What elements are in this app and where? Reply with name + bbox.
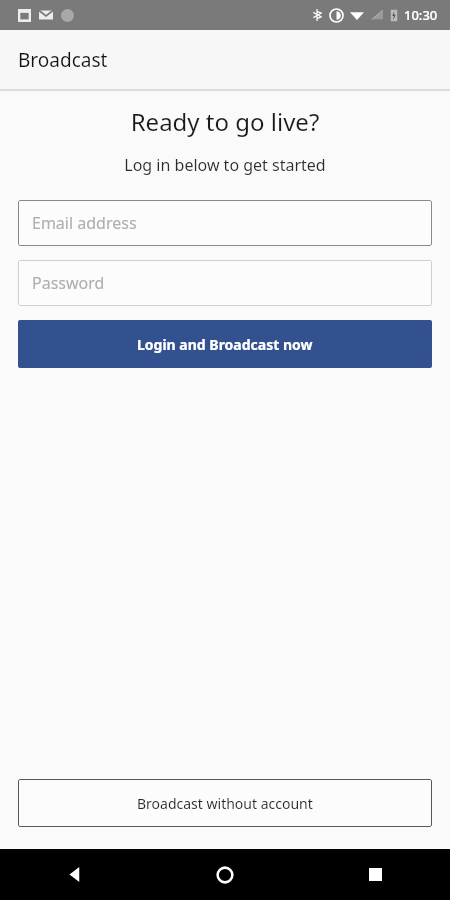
button[interactable]: Recent apps xyxy=(300,849,450,900)
button[interactable]: Broadcast without account xyxy=(18,779,432,827)
staticText: Ready to go live? xyxy=(0,105,450,138)
button[interactable]: Home xyxy=(150,849,300,900)
button[interactable]: Login and Broadcast now xyxy=(18,320,432,368)
staticText: Broadcast xyxy=(18,47,108,73)
button[interactable]: Back xyxy=(0,849,150,900)
staticText: Broadcast without account xyxy=(137,794,313,813)
button[interactable]: Password xyxy=(18,260,432,306)
staticText: Log in below to get started xyxy=(0,154,450,176)
staticText: Password xyxy=(32,272,105,294)
button[interactable]: Email address xyxy=(18,200,432,246)
staticText: Email address xyxy=(32,212,137,234)
staticText: 10:30 xyxy=(404,6,438,24)
staticText: Login and Broadcast now xyxy=(137,335,313,354)
